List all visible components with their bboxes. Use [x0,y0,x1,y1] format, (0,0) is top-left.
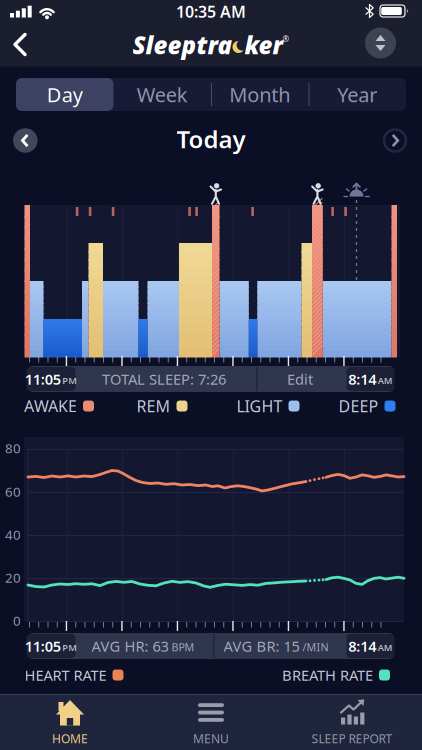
button[interactable]: SLEEP REPORT [287,696,417,750]
staticText: AVG HR: 63 [91,636,168,656]
staticText: MENU [193,730,229,746]
staticText: HEART RATE [24,665,106,685]
staticText: Day [47,81,83,108]
staticText: AM [378,641,393,654]
staticText: Edit [287,369,313,389]
staticText: SLEEP REPORT [311,730,392,746]
button[interactable]: Day [16,78,113,111]
staticText: Sleeptra [132,29,232,61]
staticText: Week [137,81,188,108]
staticText: ® [282,34,289,44]
staticText: 40 [5,526,21,543]
staticText: Month [229,81,290,108]
staticText: 60 [5,483,21,500]
staticText: LIGHT [236,395,282,417]
button[interactable]: Edit [270,367,330,391]
staticText: 80 [5,439,21,457]
button[interactable]: Week [114,78,211,111]
staticText: 10:35 AM [176,1,246,22]
button[interactable]: HOME [10,696,130,750]
staticText: AVG BR: 15 [223,636,299,656]
staticText: 8:14 [348,369,376,389]
button[interactable]: Previous day [13,128,38,153]
staticText: 11:05 [25,369,61,389]
staticText: DEEP [338,395,378,417]
staticText: Today [176,123,245,155]
button[interactable]: Back [7,29,33,59]
button[interactable]: Next day [384,129,406,151]
staticText: Year [337,81,377,108]
button[interactable]: MENU [151,696,271,750]
staticText: 8:14 [348,636,376,656]
staticText: ker [244,29,282,61]
button[interactable]: Adjust [365,27,396,58]
button[interactable]: Year [309,78,406,111]
button[interactable]: Month [211,78,308,111]
staticText: REM [136,395,170,417]
staticText: BREATH RATE [282,665,373,685]
staticText: HOME [52,730,88,746]
staticText: AWAKE [24,395,77,417]
staticText: TOTAL SLEEP: 7:26 [102,369,226,389]
staticText: PM [62,641,77,654]
staticText: 20 [5,569,21,586]
staticText: 0 [13,612,21,629]
staticText: /MIN [302,640,328,654]
staticText: BPM [171,640,194,654]
staticText: 11:05 [25,636,61,656]
staticText: AM [378,374,393,387]
staticText: PM [62,374,77,387]
